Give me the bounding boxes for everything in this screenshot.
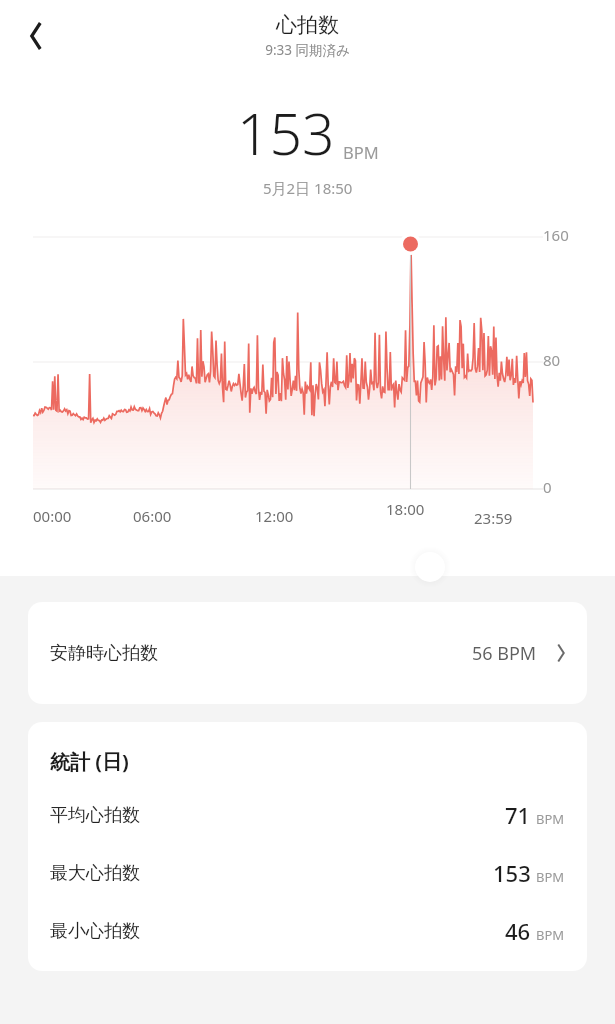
staticText: 80	[543, 350, 561, 370]
button[interactable]: 最小心拍数	[50, 913, 565, 949]
staticText: 安静時心拍数	[50, 642, 158, 665]
staticText: BPM	[343, 141, 379, 163]
staticText: 71	[505, 800, 531, 830]
staticText: 12:00	[255, 506, 294, 526]
staticText: 23:59	[474, 508, 513, 528]
staticText: 18:00	[386, 499, 425, 519]
staticText: BPM	[536, 868, 565, 886]
staticText: BPM	[536, 810, 565, 828]
staticText: 9:33 同期済み	[265, 41, 350, 59]
staticText: BPM	[536, 926, 565, 944]
staticText: 5月2日 18:50	[263, 178, 353, 198]
staticText: 平均心拍数	[50, 804, 140, 827]
staticText: 153	[493, 858, 531, 888]
staticText: 06:00	[133, 506, 172, 526]
button[interactable]: Back	[12, 12, 60, 60]
button[interactable]: 安静時心拍数	[28, 602, 587, 704]
staticText: 46	[505, 916, 531, 946]
button[interactable]: 最大心拍数	[50, 855, 565, 891]
staticText: 00:00	[33, 506, 72, 526]
staticText: 160	[543, 225, 569, 245]
staticText: 統計 (日)	[50, 748, 129, 775]
staticText: 心拍数	[276, 12, 339, 38]
staticText: 0	[543, 477, 552, 497]
button[interactable]: 平均心拍数	[50, 797, 565, 833]
staticText: 56 BPM	[472, 641, 537, 666]
staticText: 最小心拍数	[50, 920, 140, 943]
staticText: 最大心拍数	[50, 862, 140, 885]
staticText: 153	[237, 94, 335, 172]
